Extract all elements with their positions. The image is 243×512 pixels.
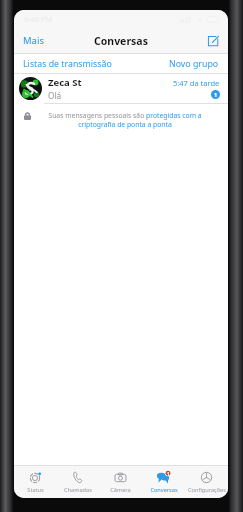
staticText: Novo grupo bbox=[169, 58, 219, 70]
other: Camera bbox=[114, 471, 127, 484]
staticText: Conversas bbox=[150, 486, 178, 494]
staticText: Conversas bbox=[94, 34, 148, 48]
staticText: 5:48 PM bbox=[24, 14, 53, 24]
button[interactable]: Settings bbox=[185, 466, 228, 498]
staticText: Status bbox=[27, 486, 44, 494]
staticText: 1 bbox=[214, 91, 218, 98]
button[interactable]: Novo grupo bbox=[163, 54, 228, 73]
staticText: 1 bbox=[167, 471, 170, 478]
staticText: Zeca St bbox=[48, 76, 82, 89]
other: Calls bbox=[71, 471, 84, 484]
button[interactable]: New chat bbox=[198, 28, 228, 53]
button[interactable]: 1 bbox=[142, 466, 185, 498]
staticText: Câmera bbox=[110, 486, 131, 494]
staticText: Suas mensagens pessoais são protegidas c… bbox=[36, 111, 214, 129]
button[interactable]: Status bbox=[14, 466, 56, 498]
button[interactable]: Camera bbox=[99, 466, 142, 498]
staticText: 5:47 da tarde bbox=[173, 78, 220, 88]
other: Settings bbox=[200, 471, 213, 484]
button[interactable]: Listas de transmissão bbox=[14, 54, 118, 73]
staticText: Chamadas bbox=[64, 486, 92, 494]
staticText: Olá bbox=[48, 90, 62, 101]
button[interactable]: Mais bbox=[14, 28, 53, 53]
other: Status bbox=[29, 471, 42, 484]
staticText: Mais bbox=[23, 34, 44, 47]
staticText: Configurações bbox=[188, 486, 226, 494]
button[interactable]: Zeca St bbox=[14, 74, 228, 103]
staticText: Listas de transmissão bbox=[23, 58, 112, 70]
button[interactable]: Calls bbox=[56, 466, 99, 498]
